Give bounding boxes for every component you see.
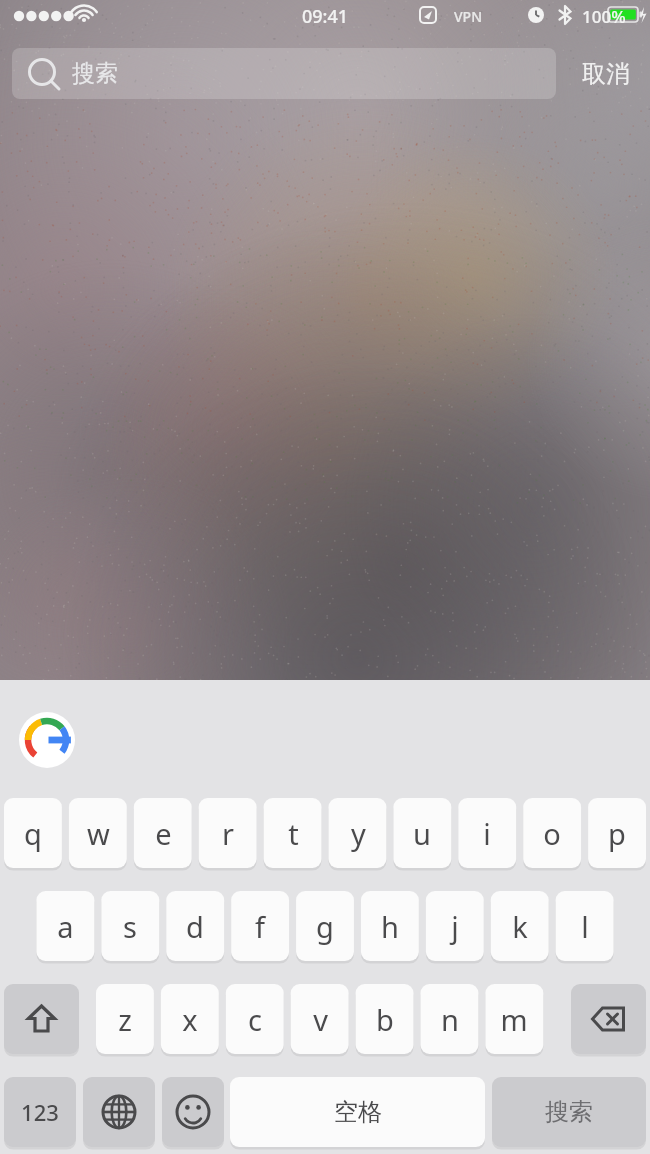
staticText: b <box>376 1000 394 1039</box>
staticText: n <box>441 1000 459 1039</box>
button[interactable]: p <box>588 798 646 868</box>
button[interactable]: u <box>393 798 451 868</box>
button[interactable]: i <box>458 798 516 868</box>
staticText: 取消 <box>582 59 630 89</box>
button[interactable]: 空格 <box>230 1077 485 1147</box>
staticText: 123 <box>21 1097 59 1127</box>
button[interactable]: a <box>36 891 94 961</box>
staticText: g <box>316 907 334 946</box>
staticText: o <box>543 814 561 853</box>
button[interactable]: Change keyboard language <box>83 1077 155 1147</box>
staticText: j <box>451 907 459 946</box>
button[interactable]: s <box>101 891 159 961</box>
staticText: t <box>288 814 299 853</box>
button[interactable]: Google search <box>19 712 75 768</box>
staticText: p <box>608 814 626 853</box>
staticText: y <box>351 814 366 853</box>
staticText: i <box>483 814 491 853</box>
staticText: f <box>255 907 265 946</box>
button[interactable]: k <box>491 891 549 961</box>
staticText: z <box>118 1000 132 1039</box>
button[interactable]: f <box>231 891 289 961</box>
button[interactable]: Backspace <box>571 984 646 1054</box>
staticText: VPN <box>454 7 483 26</box>
button[interactable]: n <box>421 984 479 1054</box>
button[interactable]: j <box>426 891 484 961</box>
staticText: q <box>24 814 42 853</box>
staticText: d <box>186 907 204 946</box>
button[interactable]: z <box>96 984 154 1054</box>
staticText: r <box>222 814 234 853</box>
staticText: 09:41 <box>302 4 349 29</box>
staticText: e <box>155 814 172 853</box>
staticText: l <box>581 907 589 946</box>
button[interactable]: q <box>4 798 62 868</box>
button[interactable]: b <box>356 984 414 1054</box>
button[interactable]: c <box>226 984 284 1054</box>
button[interactable]: 搜索 <box>12 48 556 99</box>
button[interactable]: o <box>523 798 581 868</box>
button[interactable]: x <box>161 984 219 1054</box>
staticText: w <box>87 814 110 853</box>
button[interactable]: 搜索 <box>492 1077 646 1147</box>
button[interactable]: w <box>69 798 127 868</box>
button[interactable]: y <box>329 798 387 868</box>
button[interactable]: d <box>166 891 224 961</box>
button[interactable]: t <box>264 798 322 868</box>
staticText: x <box>182 1000 198 1039</box>
button[interactable]: 取消 <box>566 50 646 98</box>
staticText: u <box>413 814 431 853</box>
button[interactable]: r <box>199 798 257 868</box>
staticText: m <box>500 1000 528 1039</box>
staticText: 搜索 <box>545 1097 593 1127</box>
staticText: 100% <box>582 5 626 28</box>
staticText: a <box>57 907 74 946</box>
staticText: h <box>381 907 399 946</box>
staticText: c <box>248 1000 262 1039</box>
button[interactable]: Emoji <box>162 1077 224 1147</box>
staticText: 空格 <box>334 1097 382 1127</box>
button[interactable]: l <box>556 891 614 961</box>
staticText: v <box>313 1000 328 1039</box>
staticText: 搜索 <box>72 59 118 88</box>
button[interactable]: h <box>361 891 419 961</box>
button[interactable]: 123 <box>4 1077 76 1147</box>
button[interactable]: Shift <box>4 984 79 1054</box>
button[interactable]: v <box>291 984 349 1054</box>
button[interactable]: e <box>134 798 192 868</box>
button[interactable]: m <box>485 984 543 1054</box>
staticText: s <box>123 907 137 946</box>
button[interactable]: g <box>296 891 354 961</box>
staticText: k <box>512 907 528 946</box>
